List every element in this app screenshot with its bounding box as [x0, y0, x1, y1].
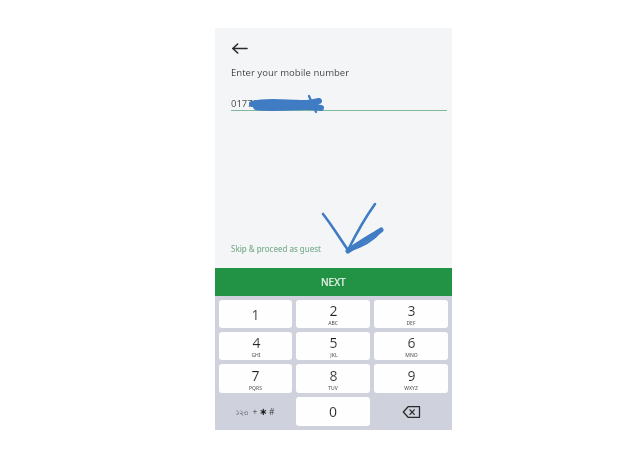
staticText: ১২৩ + ✱ #	[236, 406, 275, 418]
button[interactable]: Backspace	[372, 395, 450, 428]
button[interactable]: 7	[219, 364, 292, 393]
staticText: GHI	[251, 352, 261, 359]
staticText: 9	[407, 366, 416, 385]
staticText: 0	[329, 402, 338, 421]
staticText: JKL	[330, 352, 338, 359]
staticText: NEXT	[321, 275, 346, 289]
button[interactable]: 5	[296, 332, 370, 360]
staticText: 3	[407, 301, 416, 320]
button[interactable]: 3	[374, 300, 448, 328]
button[interactable]: NEXT	[215, 268, 452, 296]
staticText: DEF	[406, 320, 416, 327]
button[interactable]: 9	[374, 364, 448, 393]
staticText: 5	[329, 333, 338, 352]
staticText: 2	[329, 301, 338, 320]
staticText: 8	[329, 366, 338, 385]
staticText: WXYZ	[404, 385, 418, 392]
staticText: ABC	[328, 320, 338, 327]
button[interactable]: 1	[219, 300, 292, 328]
button[interactable]: ১২৩ + ✱ #	[217, 395, 294, 428]
staticText: 1	[251, 305, 260, 324]
button[interactable]: Skip & proceed as guest	[227, 241, 325, 256]
button[interactable]: 8	[296, 364, 370, 393]
staticText: PQRS	[249, 385, 262, 392]
button[interactable]: 0	[296, 397, 370, 426]
staticText: 4	[252, 333, 261, 352]
staticText: 01778	[231, 97, 259, 110]
staticText: 6	[407, 333, 416, 352]
staticText: Skip & proceed as guest	[231, 243, 321, 254]
button[interactable]: 4	[219, 332, 292, 360]
button[interactable]: Back	[225, 34, 253, 62]
button[interactable]: 6	[374, 332, 448, 360]
staticText: MNO	[405, 352, 418, 359]
staticText: 7	[251, 366, 260, 385]
button[interactable]: 2	[296, 300, 370, 328]
staticText: TUV	[328, 385, 338, 392]
staticText: Enter your mobile number	[231, 66, 350, 79]
